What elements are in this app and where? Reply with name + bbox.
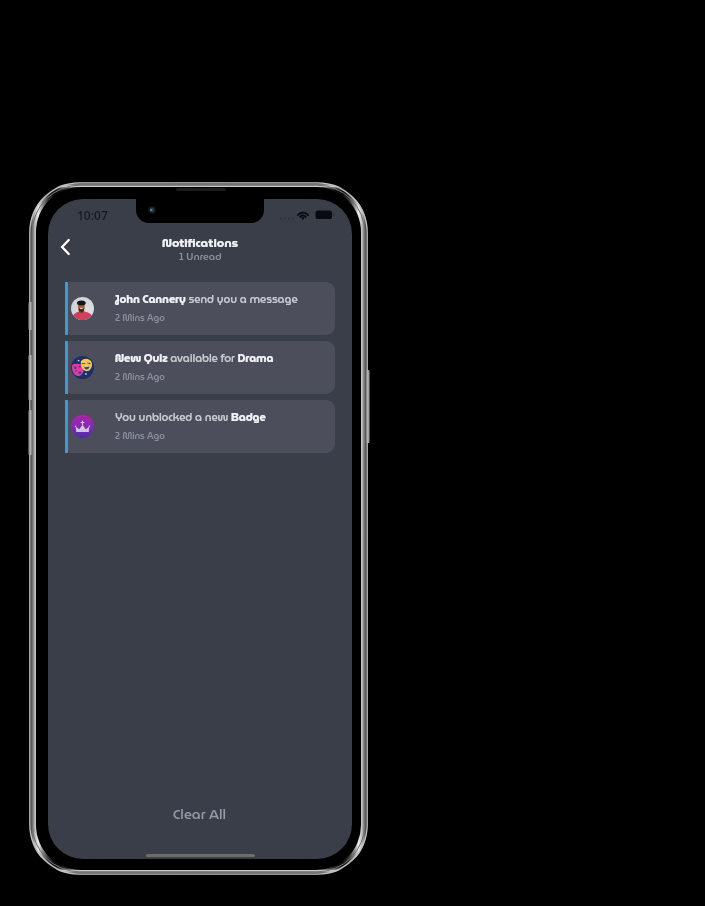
staticText: Clear All — [173, 803, 227, 825]
button[interactable]: New Quiz available for Drama — [65, 341, 335, 394]
staticText: 1 Unread — [179, 249, 222, 264]
button[interactable]: Clear All — [48, 791, 352, 833]
staticText: 2 Mins Ago — [115, 311, 165, 325]
button[interactable]: Back — [52, 234, 78, 260]
button[interactable]: John Cannery send you a message — [65, 282, 335, 335]
staticText: You unblocked a new Badge — [115, 408, 266, 425]
staticText: New Quiz available for Drama — [115, 349, 274, 366]
staticText: 2 Mins Ago — [115, 370, 165, 384]
staticText: John Cannery send you a message — [115, 290, 298, 307]
staticText: 2 Mins Ago — [115, 429, 165, 443]
staticText: Notifications — [162, 233, 239, 252]
staticText: 10:07 — [77, 207, 108, 223]
button[interactable]: You unblocked a new Badge — [65, 400, 335, 453]
